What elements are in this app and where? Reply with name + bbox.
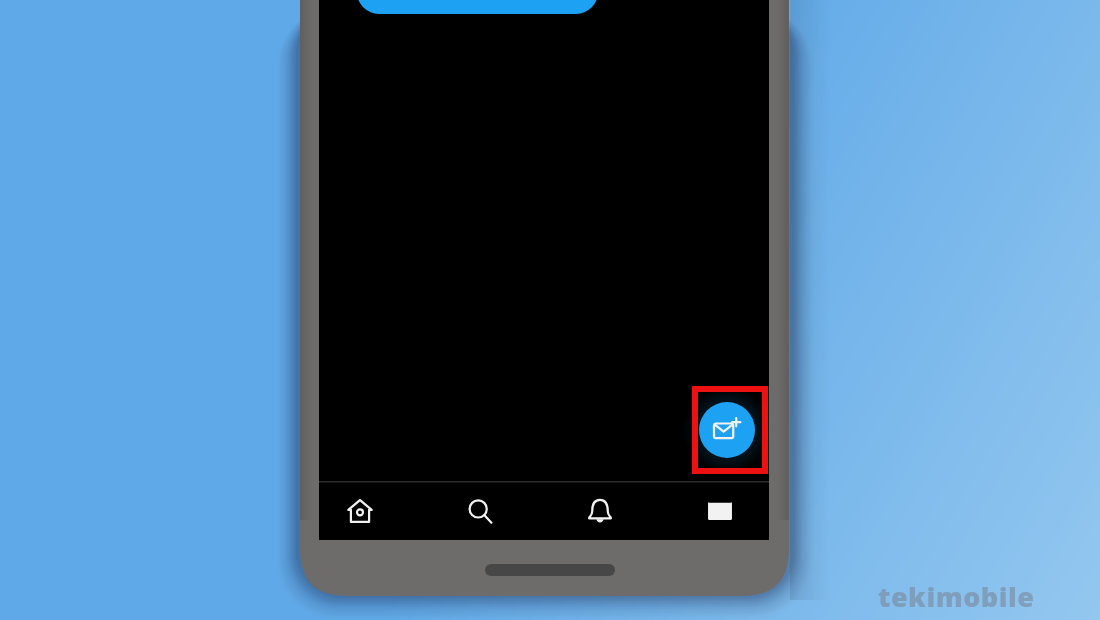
- button[interactable]: [357, 0, 598, 14]
- button[interactable]: Search: [452, 486, 508, 536]
- staticText: tekimobile: [878, 578, 1035, 615]
- button[interactable]: Notifications: [572, 486, 628, 536]
- button[interactable]: New message: [699, 402, 755, 458]
- button[interactable]: Messages: [692, 486, 748, 536]
- button[interactable]: Home: [332, 486, 388, 536]
